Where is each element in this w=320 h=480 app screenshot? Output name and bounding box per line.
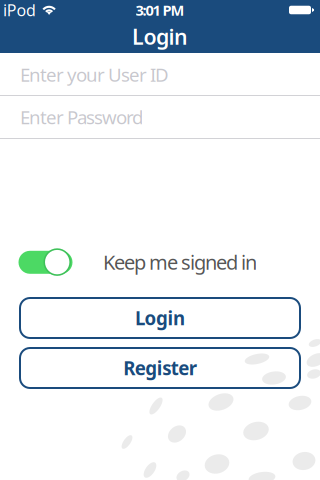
staticText: Enter your User ID (20, 62, 169, 87)
staticText: Login (135, 306, 185, 330)
button[interactable] (18, 249, 72, 276)
button[interactable]: Enter Password (0, 96, 320, 138)
staticText: iPod (3, 0, 36, 21)
staticText: 3:01 PM (135, 0, 184, 20)
button[interactable]: Enter your User ID (0, 54, 320, 95)
staticText: Login (132, 22, 188, 51)
staticText: Enter Password (20, 105, 143, 129)
staticText: Register (123, 356, 197, 380)
button[interactable]: Login (20, 298, 300, 338)
staticText: Keep me signed in (103, 249, 257, 275)
button[interactable]: Register (20, 348, 300, 388)
